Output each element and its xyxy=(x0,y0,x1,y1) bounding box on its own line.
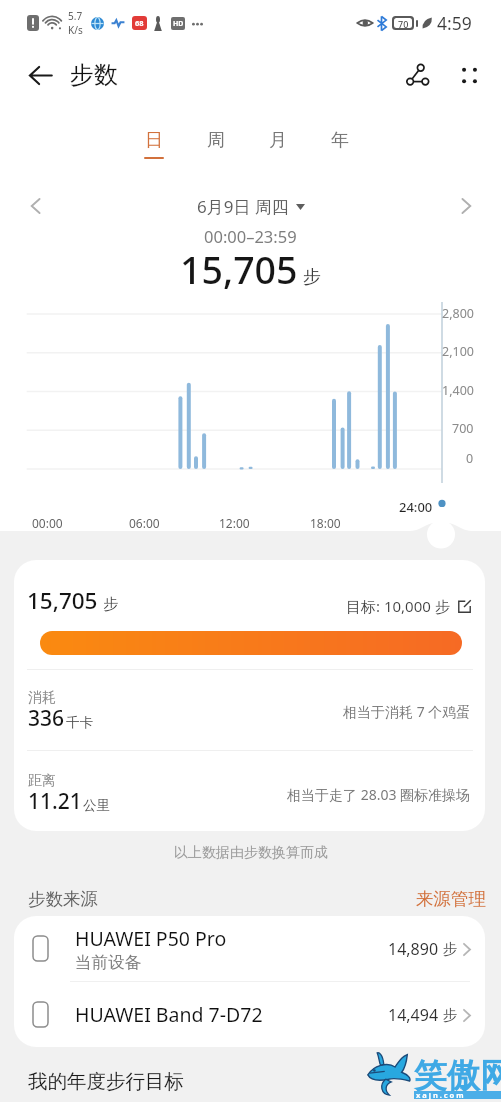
button[interactable]: 周 xyxy=(185,122,247,164)
button[interactable]: 消耗 xyxy=(14,670,485,750)
button[interactable]: 年 xyxy=(309,122,371,164)
staticText: 公里 xyxy=(83,797,110,814)
staticText: 06:00 xyxy=(129,515,160,531)
staticText: 14,890 xyxy=(388,938,439,960)
staticText: 目标: 10,000 步 xyxy=(346,596,450,616)
staticText: 千卡 xyxy=(66,714,93,731)
button[interactable]: 月 xyxy=(247,122,309,164)
staticText: 68 xyxy=(135,18,144,28)
staticText: 步 xyxy=(443,940,458,958)
staticText: 0 xyxy=(466,450,474,467)
button[interactable]: Previous day xyxy=(14,185,56,227)
button[interactable]: 目标: 10,000 步 xyxy=(346,596,471,616)
staticText: 步 xyxy=(303,266,321,289)
button[interactable]: 6月9日 周四 xyxy=(197,195,305,218)
staticText: 相当于消耗 7 个鸡蛋 xyxy=(343,702,471,721)
staticText: 6月9日 周四 xyxy=(197,195,289,218)
staticText: 700 xyxy=(452,420,474,437)
staticText: 4:59 xyxy=(437,11,472,35)
staticText: 12:00 xyxy=(219,515,250,531)
staticText: 336 xyxy=(28,704,65,733)
button[interactable]: HUAWEI P50 Pro xyxy=(14,916,485,981)
staticText: HUAWEI P50 Pro xyxy=(75,925,227,952)
staticText: 月 xyxy=(269,129,287,152)
staticText: 日 xyxy=(145,129,163,152)
staticText: 消耗 xyxy=(28,689,56,707)
button[interactable]: More options xyxy=(443,49,495,101)
staticText: 年 xyxy=(331,129,349,152)
staticText: 2,100 xyxy=(442,343,474,360)
staticText: 2,800 xyxy=(442,305,474,322)
staticText: 5.7 xyxy=(68,9,83,23)
staticText: 18:00 xyxy=(310,515,341,531)
staticText: 14,494 xyxy=(388,1004,439,1026)
staticText: 笑傲网 xyxy=(414,1055,501,1097)
staticText: 周 xyxy=(207,129,225,152)
button[interactable]: 日 xyxy=(123,122,185,164)
staticText: 15,705 xyxy=(180,244,298,295)
staticText: 00:00 xyxy=(32,515,63,531)
button[interactable]: HUAWEI Band 7-D72 xyxy=(14,982,485,1047)
staticText: HD xyxy=(173,19,184,29)
staticText: 以上数据由步数换算而成 xyxy=(174,844,328,862)
button[interactable]: 距离 xyxy=(14,750,485,830)
staticText: 24:00 xyxy=(399,498,433,516)
staticText: 1,400 xyxy=(442,382,474,399)
button[interactable]: Share xyxy=(391,49,443,101)
staticText: 步数来源 xyxy=(28,888,98,910)
staticText: K/s xyxy=(68,23,83,37)
staticText: 70 xyxy=(398,18,409,28)
button[interactable]: Next day xyxy=(445,185,487,227)
staticText: 当前设备 xyxy=(75,952,141,973)
button[interactable]: 来源管理 xyxy=(416,888,486,910)
staticText: 我的年度步行目标 xyxy=(28,1069,184,1094)
staticText: 相当于走了 28.03 圈标准操场 xyxy=(287,785,471,804)
staticText: 距离 xyxy=(28,772,56,790)
staticText: 15,705 xyxy=(27,585,98,616)
staticText: x a j n . c o m xyxy=(416,1090,464,1100)
staticText: HUAWEI Band 7-D72 xyxy=(75,1001,263,1028)
staticText: 步数 xyxy=(70,60,118,90)
staticText: 步 xyxy=(103,595,118,614)
staticText: 来源管理 xyxy=(416,888,486,910)
staticText: 步 xyxy=(443,1006,458,1024)
staticText: 00:00–23:59 xyxy=(204,225,297,247)
button[interactable]: Back xyxy=(16,51,64,99)
staticText: 11.21 xyxy=(28,787,82,816)
